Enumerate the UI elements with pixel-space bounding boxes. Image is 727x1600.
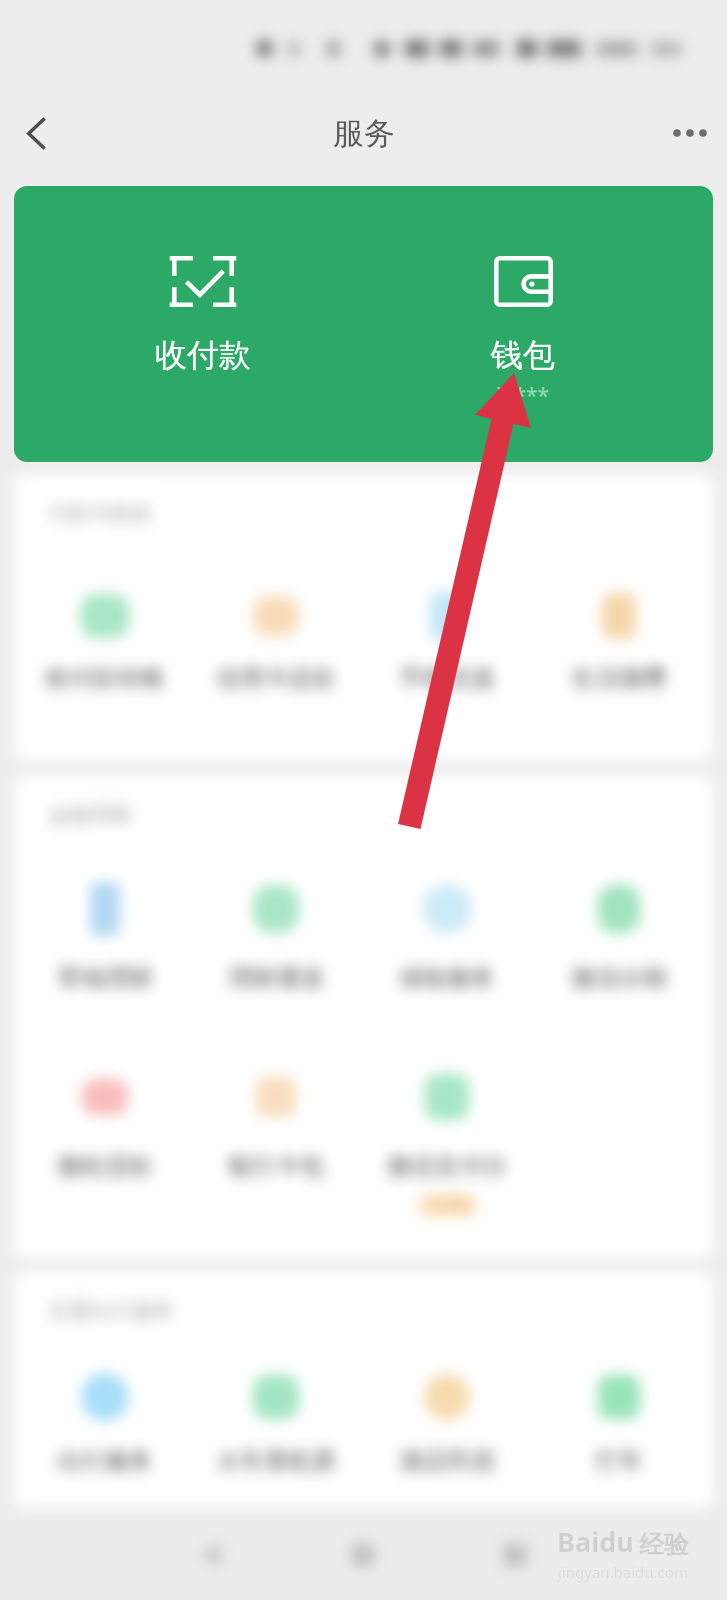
staticText: 零钱理财 — [57, 963, 153, 993]
button[interactable]: 银行卡包 — [191, 1077, 361, 1215]
button[interactable]: 打车 — [534, 1375, 704, 1508]
button[interactable]: 微粒贷款 — [20, 1079, 190, 1217]
staticText: 银行卡包 — [228, 1151, 324, 1181]
staticText: ¥ *** — [497, 381, 550, 410]
staticText: 微信支付分 — [387, 1151, 507, 1181]
staticText: 理财通道 — [228, 963, 324, 993]
button[interactable]: 火车票机票 — [191, 1375, 361, 1508]
button[interactable]: 信用卡还款 — [191, 596, 361, 727]
button[interactable]: 钱包 — [433, 186, 613, 462]
button[interactable]: 零钱理财 — [20, 882, 190, 1020]
button[interactable]: 微信支付分 — [362, 1074, 532, 1212]
staticText: 收付款 — [155, 335, 251, 375]
staticText: 微粒贷款 — [57, 1151, 153, 1181]
button[interactable]: 酒店民宿 — [362, 1374, 532, 1507]
button[interactable]: 生活缴费 — [534, 593, 704, 724]
button[interactable]: 出行服务 — [20, 1373, 190, 1506]
staticText: 收付款转账 — [45, 663, 165, 693]
staticText: 服务 — [333, 114, 395, 153]
staticText: Baidu — [557, 1523, 634, 1560]
button[interactable]: 理财通道 — [191, 885, 361, 1023]
staticText: 保险服务 — [399, 963, 495, 993]
staticText: 打车 — [595, 1446, 643, 1476]
staticText: 火车票机票 — [216, 1446, 336, 1476]
staticText: 可开通 — [425, 1196, 470, 1215]
button[interactable]: Recents — [487, 1527, 543, 1583]
staticText: 信用卡还款 — [216, 663, 336, 693]
staticText: 付款与收款 — [48, 500, 153, 526]
staticText: 手机充值 — [399, 663, 495, 693]
button[interactable]: Home — [335, 1527, 391, 1583]
staticText: 经验 — [639, 1529, 689, 1560]
staticText: 微信分期 — [571, 963, 667, 993]
button[interactable]: More options — [662, 105, 718, 161]
button[interactable]: 手机充值 — [362, 592, 532, 723]
button[interactable]: Back — [182, 1527, 238, 1583]
button[interactable]: 收付款 — [113, 186, 293, 462]
staticText: 金融理财 — [48, 802, 132, 828]
staticText: jingyan.baidu.com — [558, 1562, 688, 1582]
button[interactable]: 保险服务 — [362, 885, 532, 1023]
staticText: 出行服务 — [57, 1446, 153, 1476]
button[interactable]: Back — [8, 105, 64, 161]
staticText: 钱包 — [491, 335, 555, 375]
staticText: 酒店民宿 — [399, 1446, 495, 1476]
staticText: 生活缴费 — [571, 663, 667, 693]
button[interactable]: 微信分期 — [534, 885, 704, 1023]
button[interactable]: 收付款转账 — [20, 594, 190, 725]
staticText: 交通出行服务 — [48, 1298, 174, 1324]
